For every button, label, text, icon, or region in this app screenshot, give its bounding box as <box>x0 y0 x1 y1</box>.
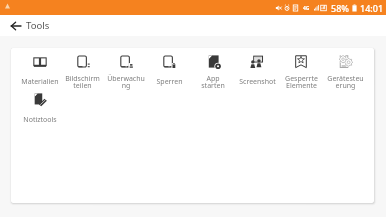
staticText: Gerätesteu erung <box>327 74 364 90</box>
button[interactable]: Überwachu ng <box>104 54 147 91</box>
button[interactable]: Screenshot <box>235 54 279 91</box>
button[interactable]: Sperren <box>147 54 191 91</box>
button[interactable]: Bildschirm teilen <box>61 54 104 91</box>
button[interactable]: Gesperrte Elemente <box>279 54 323 91</box>
staticText: Tools <box>26 19 50 32</box>
staticText: Gesperrte Elemente <box>285 74 318 90</box>
button[interactable]: App starten <box>191 54 235 91</box>
staticText: App starten <box>201 74 225 90</box>
staticText: 4G <box>303 5 310 12</box>
staticText: Bildschirm teilen <box>65 74 100 90</box>
staticText: Überwachu ng <box>107 74 145 90</box>
button[interactable]: Materialien <box>18 54 61 91</box>
staticText: Sperren <box>156 77 183 87</box>
button[interactable]: Notiztools <box>18 92 61 129</box>
staticText: 14:01 <box>360 2 384 14</box>
staticText: Materialien <box>21 77 59 87</box>
staticText: Notiztools <box>23 115 57 125</box>
staticText: Screenshot <box>239 77 276 87</box>
button[interactable]: Back <box>6 15 26 36</box>
staticText: 58% <box>331 2 349 14</box>
button[interactable]: Gerätesteu erung <box>323 54 367 91</box>
